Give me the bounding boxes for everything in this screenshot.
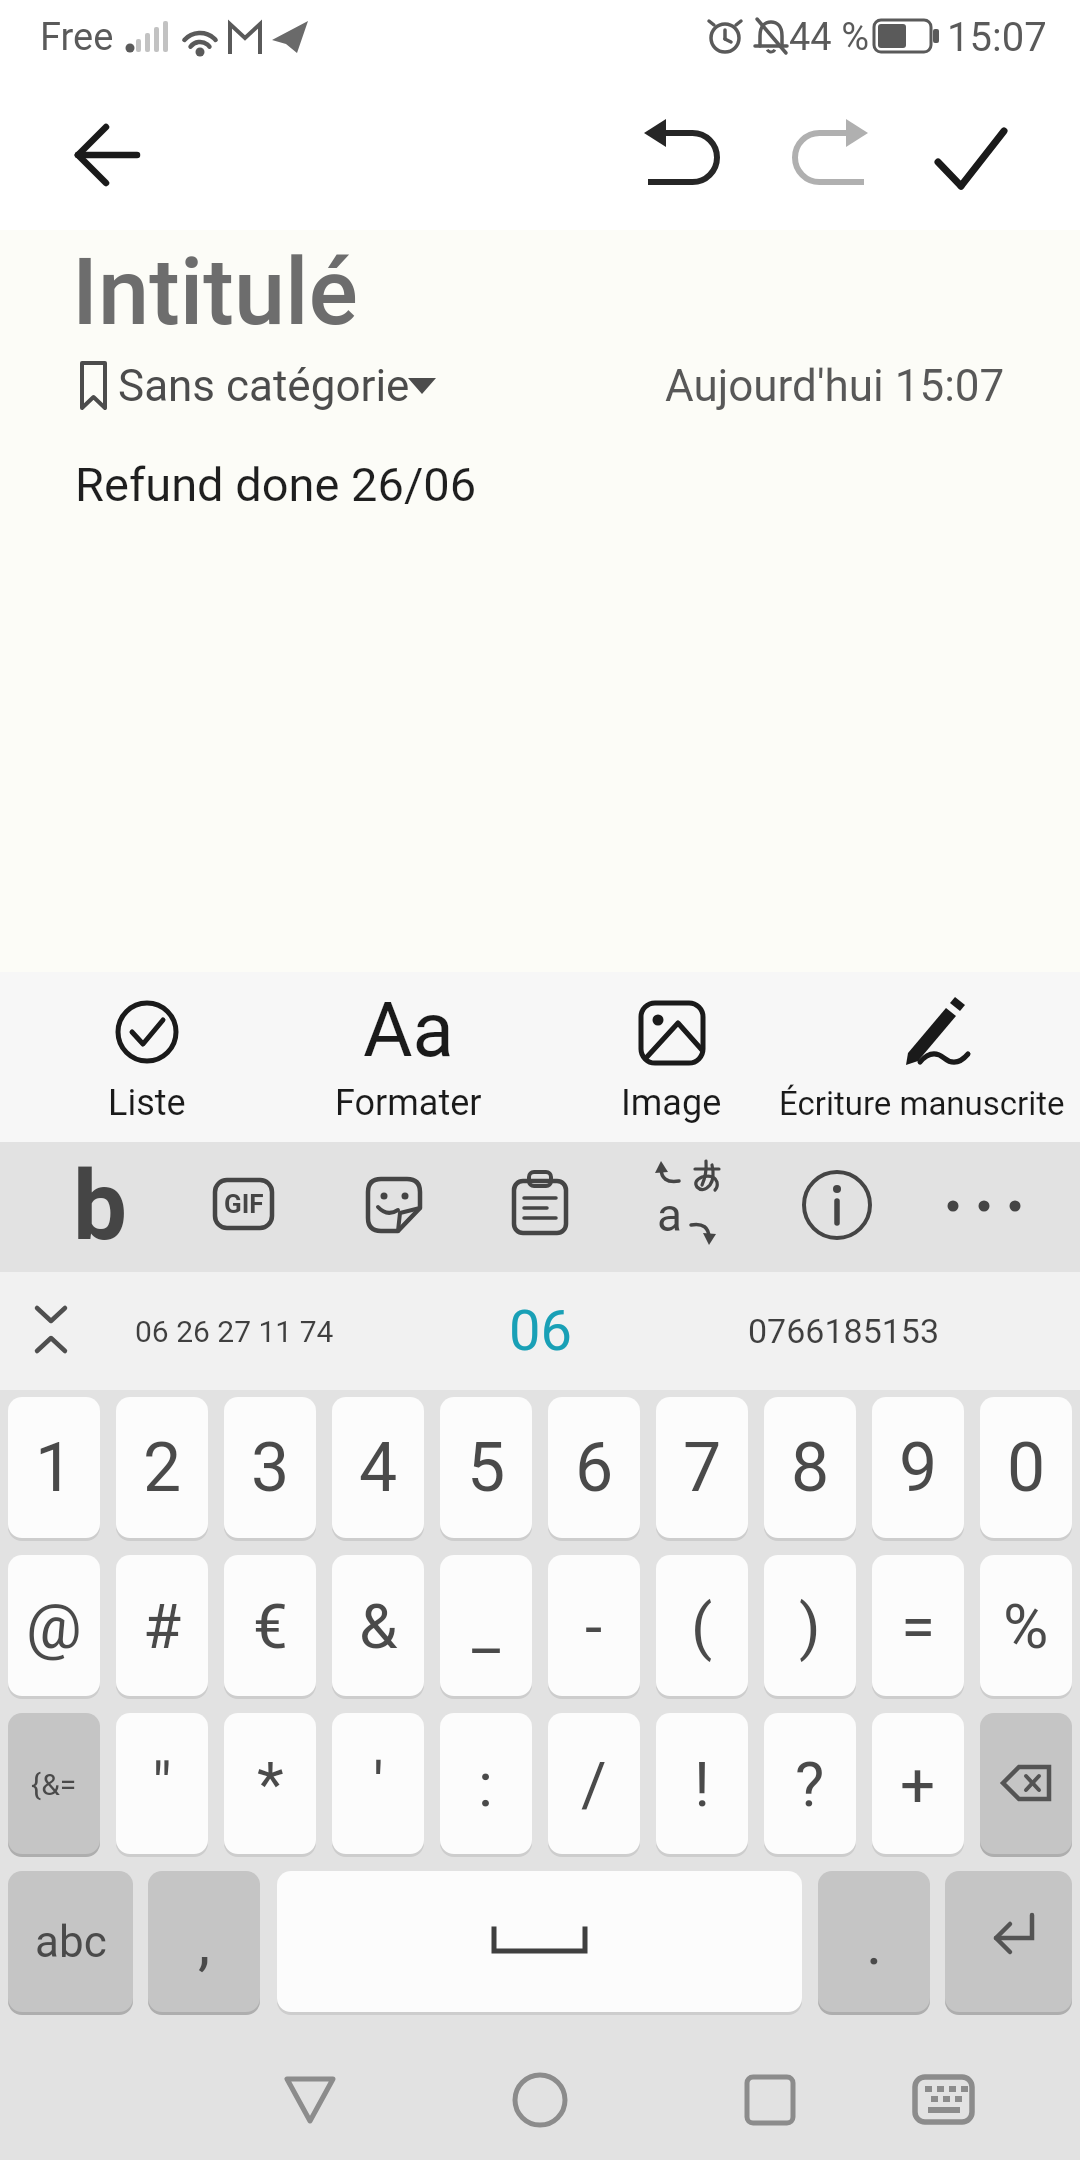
staticText: Aa	[363, 985, 454, 1065]
button[interactable]: %	[980, 1555, 1072, 1699]
button[interactable]: ?	[764, 1713, 856, 1857]
button[interactable]: )	[764, 1555, 856, 1699]
button[interactable]	[925, 1146, 1045, 1268]
staticText: abc	[35, 1916, 107, 1968]
button[interactable]: 2	[116, 1397, 208, 1541]
button[interactable]: 3	[224, 1397, 316, 1541]
staticText: 0	[1007, 1428, 1046, 1508]
button[interactable]: 0	[980, 1397, 1072, 1541]
button[interactable]: 0766185153	[748, 1305, 948, 1357]
staticText: +	[900, 1748, 936, 1821]
button[interactable]	[67, 985, 227, 1130]
button[interactable]: =	[872, 1555, 964, 1699]
staticText: '	[373, 1748, 384, 1821]
staticText: a	[657, 1188, 683, 1240]
button[interactable]: +	[872, 1713, 964, 1857]
button[interactable]: &	[332, 1555, 424, 1699]
staticText: &	[359, 1590, 398, 1663]
staticText: *	[257, 1748, 284, 1821]
staticText: .	[866, 1906, 883, 1979]
staticText: _	[472, 1590, 500, 1663]
button[interactable]: 1	[8, 1397, 100, 1541]
staticText: ,	[198, 1906, 211, 1979]
button[interactable]	[277, 1871, 802, 2015]
button[interactable]	[884, 2040, 1004, 2160]
button[interactable]: '	[332, 1713, 424, 1857]
staticText: 06 26 27 11 74	[135, 1314, 334, 1349]
button[interactable]	[333, 1146, 453, 1268]
button[interactable]: €	[224, 1555, 316, 1699]
button[interactable]: #	[116, 1555, 208, 1699]
staticText: Liste	[108, 1082, 186, 1124]
staticText: :	[478, 1748, 494, 1821]
button[interactable]: -	[548, 1555, 640, 1699]
button[interactable]: @	[8, 1555, 100, 1699]
button[interactable]: _	[440, 1555, 532, 1699]
button[interactable]: "	[116, 1713, 208, 1857]
staticText: -	[585, 1590, 603, 1663]
button[interactable]	[945, 1871, 1072, 2015]
button[interactable]: *	[224, 1713, 316, 1857]
button[interactable]	[805, 985, 1061, 1130]
button[interactable]	[480, 1146, 600, 1268]
button[interactable]: 4	[332, 1397, 424, 1541]
staticText: €	[253, 1590, 288, 1663]
staticText: Refund done 26/06	[75, 457, 477, 512]
button[interactable]: 9	[872, 1397, 964, 1541]
staticText: 8	[791, 1428, 830, 1508]
staticText: {&=	[31, 1767, 77, 1802]
staticText: 6	[575, 1428, 614, 1508]
button[interactable]	[250, 2040, 370, 2160]
staticText: /	[581, 1748, 607, 1821]
button[interactable]	[40, 1146, 160, 1268]
staticText: 9	[899, 1428, 938, 1508]
staticText: Formater	[335, 1082, 482, 1124]
button[interactable]	[480, 2040, 600, 2160]
staticText: 0766185153	[748, 1311, 940, 1351]
button[interactable]: (	[656, 1555, 748, 1699]
button[interactable]: 7	[656, 1397, 748, 1541]
button[interactable]	[628, 1146, 748, 1268]
staticText: Écriture manuscrite	[779, 1084, 1065, 1123]
staticText: "	[152, 1748, 172, 1821]
staticText: 5	[467, 1428, 506, 1508]
staticText: 3	[251, 1428, 290, 1508]
button[interactable]: 8	[764, 1397, 856, 1541]
button[interactable]: 5	[440, 1397, 532, 1541]
button[interactable]	[591, 985, 751, 1130]
staticText: Image	[621, 1082, 722, 1124]
staticText: !	[694, 1748, 710, 1821]
button[interactable]: !	[656, 1713, 748, 1857]
button[interactable]: /	[548, 1713, 640, 1857]
button[interactable]: {&=	[8, 1713, 100, 1857]
staticText: #	[143, 1590, 182, 1663]
staticText: ?	[795, 1748, 825, 1821]
staticText: 7	[683, 1428, 722, 1508]
staticText: (	[691, 1590, 713, 1663]
staticText: Intitulé	[72, 239, 358, 347]
button[interactable]: ,	[148, 1871, 260, 2015]
staticText: =	[901, 1590, 936, 1663]
button[interactable]: Sans catégorie	[118, 360, 418, 410]
button[interactable]: 6	[548, 1397, 640, 1541]
button[interactable]	[18, 1290, 84, 1370]
staticText: 1	[35, 1428, 74, 1508]
staticText: 2	[143, 1428, 182, 1508]
staticText: @	[26, 1590, 82, 1663]
button[interactable]	[710, 2040, 830, 2160]
button[interactable]: 06	[390, 1296, 690, 1366]
staticText: 06	[509, 1298, 572, 1364]
staticText: %	[1003, 1590, 1049, 1663]
button[interactable]	[328, 985, 488, 1130]
button[interactable]: .	[818, 1871, 930, 2015]
button[interactable]	[777, 1146, 897, 1268]
button[interactable]: 06 26 27 11 74	[135, 1305, 395, 1357]
staticText: 44 %	[789, 15, 869, 60]
staticText: 15:07	[947, 14, 1047, 61]
button[interactable]: abc	[8, 1871, 133, 2015]
button[interactable]: :	[440, 1713, 532, 1857]
button[interactable]	[183, 1146, 303, 1268]
staticText: b	[73, 1150, 128, 1260]
button[interactable]	[980, 1713, 1072, 1857]
staticText: GIF	[224, 1189, 264, 1219]
